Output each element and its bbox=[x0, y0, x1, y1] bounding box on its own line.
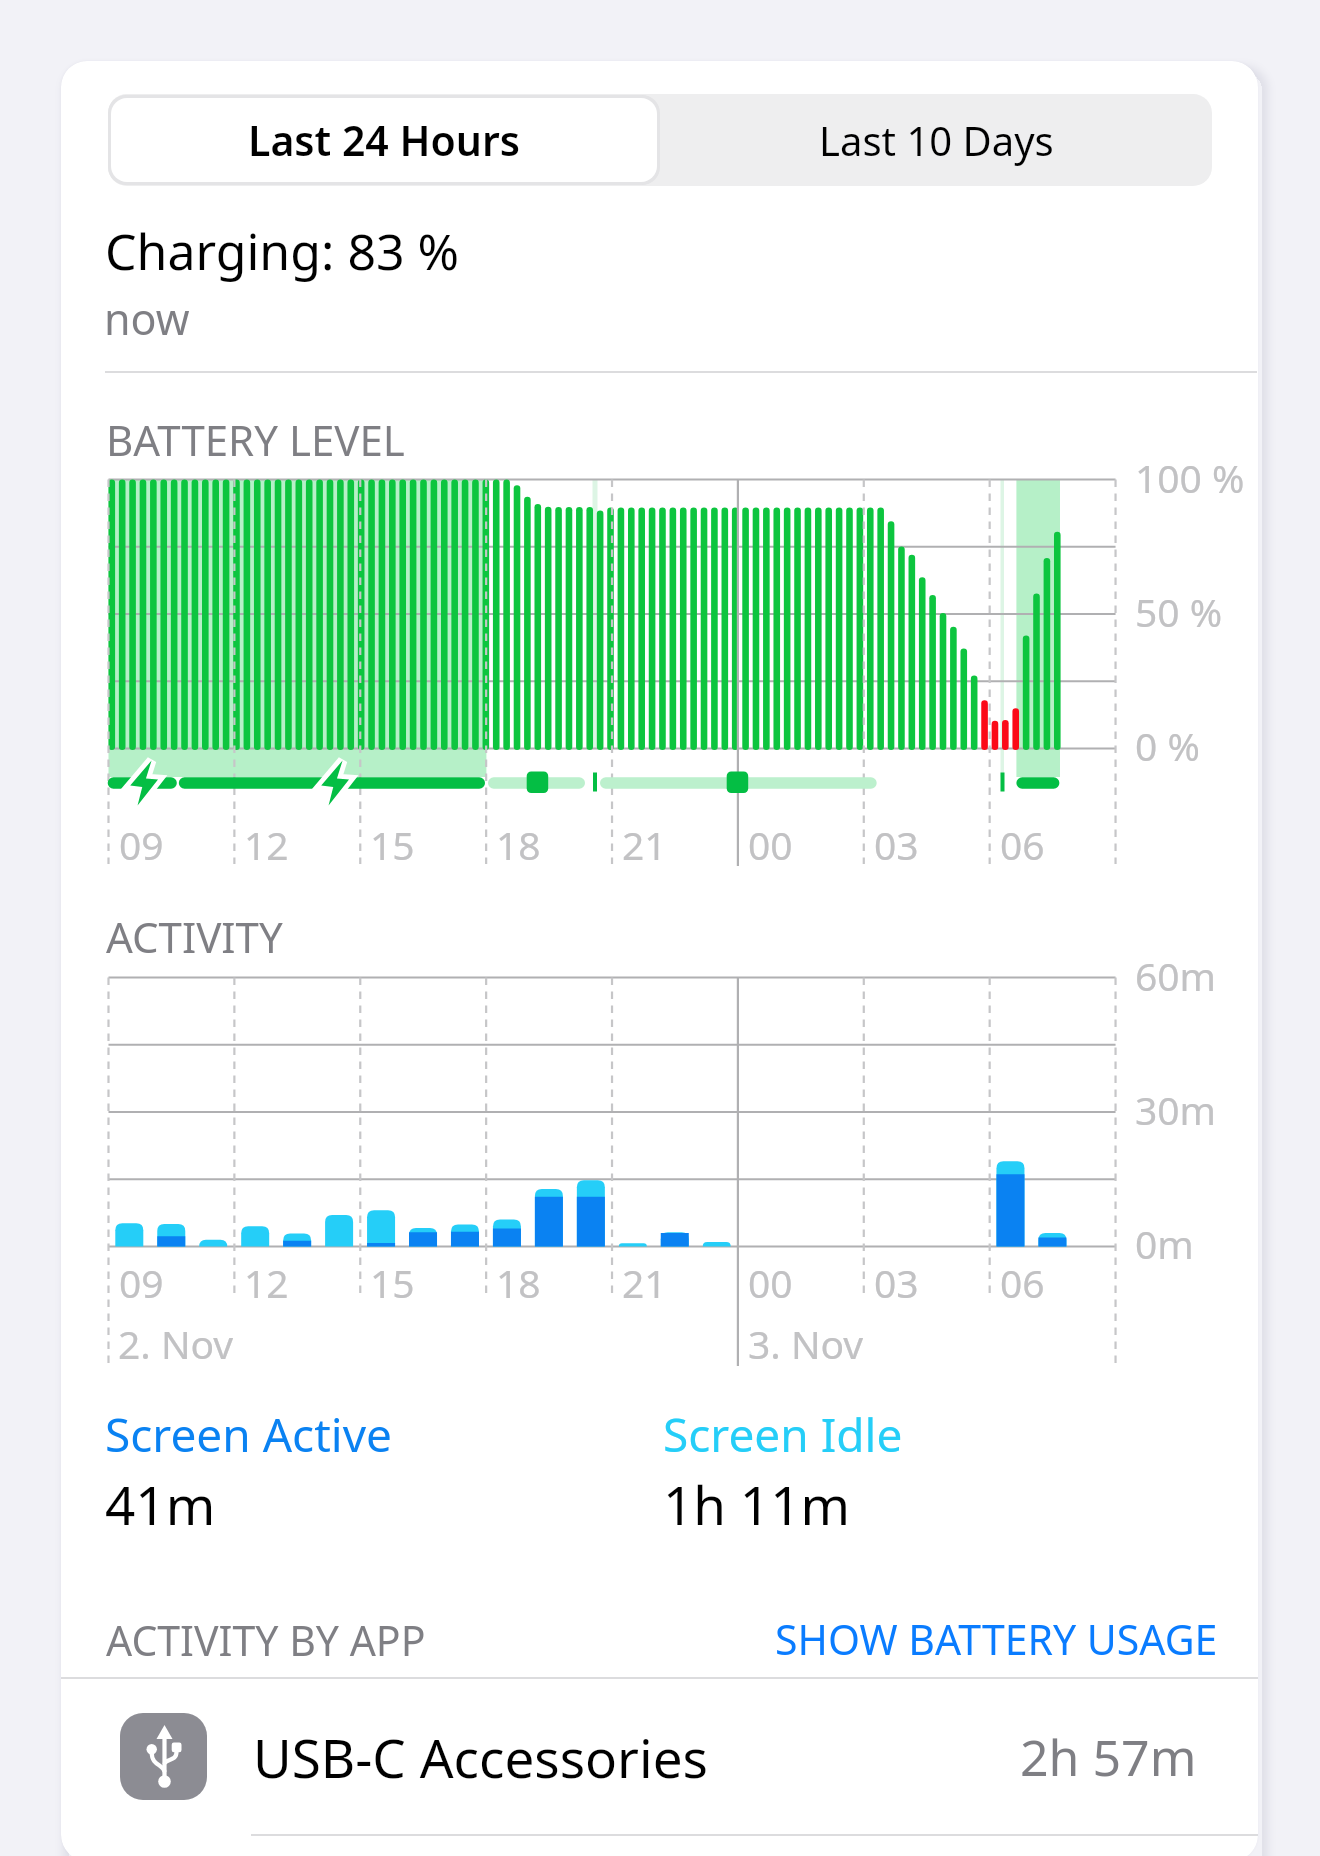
staticText: Screen Idle bbox=[663, 1403, 903, 1466]
staticText: 21 bbox=[622, 1256, 667, 1309]
other: USB bbox=[121, 1714, 207, 1800]
button[interactable]: USB bbox=[0, 1668, 1320, 1845]
staticText: now bbox=[104, 289, 190, 348]
button[interactable]: Last 10 Days bbox=[660, 94, 1212, 186]
staticText: 18 bbox=[496, 1256, 541, 1309]
staticText: 18 bbox=[496, 818, 541, 871]
staticText: 0 % bbox=[1135, 719, 1200, 772]
staticText: 12 bbox=[244, 818, 289, 871]
staticText: 50 % bbox=[1135, 585, 1223, 638]
staticText: 21 bbox=[622, 818, 667, 871]
staticText: USB-C Accessories bbox=[253, 1721, 708, 1793]
staticText: 03 bbox=[874, 818, 919, 871]
staticText: 09 bbox=[119, 818, 164, 871]
staticText: 60m bbox=[1135, 949, 1217, 1002]
staticText: 09 bbox=[119, 1256, 164, 1309]
staticText: 00 bbox=[748, 1256, 793, 1309]
staticText: 00 bbox=[748, 818, 793, 871]
staticText: 0m bbox=[1135, 1217, 1194, 1270]
staticText: Charging: 83 % bbox=[105, 217, 460, 285]
staticText: 06 bbox=[1000, 1256, 1045, 1309]
staticText: 03 bbox=[874, 1256, 919, 1309]
staticText: SHOW BATTERY USAGE bbox=[775, 1611, 1218, 1667]
staticText: 3. Nov bbox=[748, 1317, 864, 1370]
staticText: 30m bbox=[1135, 1083, 1217, 1136]
button[interactable]: SHOW BATTERY USAGE bbox=[769, 1603, 1219, 1659]
staticText: ACTIVITY BY APP bbox=[106, 1612, 426, 1668]
staticText: 15 bbox=[370, 818, 415, 871]
staticText: ACTIVITY bbox=[106, 908, 283, 965]
staticText: 41m bbox=[105, 1468, 216, 1540]
staticText: 15 bbox=[370, 1256, 415, 1309]
staticText: Last 10 Days bbox=[819, 113, 1054, 167]
button[interactable]: Last 24 Hours bbox=[111, 98, 657, 182]
staticText: 2. Nov bbox=[118, 1317, 234, 1370]
staticText: Screen Active bbox=[105, 1403, 392, 1466]
staticText: 1h 11m bbox=[663, 1468, 851, 1540]
staticText: 12 bbox=[244, 1256, 289, 1309]
staticText: BATTERY LEVEL bbox=[106, 411, 405, 468]
staticText: Last 24 Hours bbox=[248, 112, 520, 168]
staticText: 100 % bbox=[1135, 451, 1245, 504]
staticText: 06 bbox=[1000, 818, 1045, 871]
staticText: 2h 57m bbox=[1020, 1723, 1197, 1791]
